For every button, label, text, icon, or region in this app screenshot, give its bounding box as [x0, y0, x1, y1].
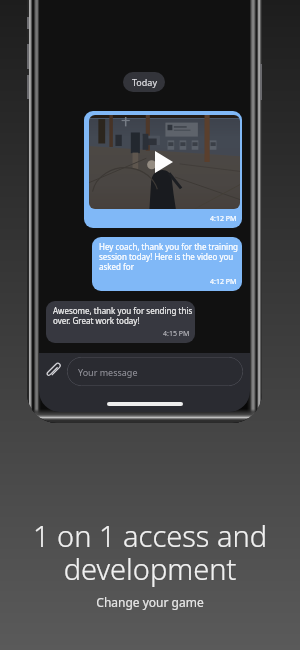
staticText: 4:12 PM	[210, 277, 237, 287]
button[interactable]: Hey coach, thank you for the training se…	[92, 237, 242, 291]
button[interactable]: Awesome, thank you for sending this over…	[46, 301, 195, 343]
staticText: Today	[132, 76, 157, 88]
staticText: Change your game	[0, 594, 300, 610]
button[interactable]: Attach file	[45, 362, 62, 379]
staticText: Hey coach, thank you for the training se…	[99, 241, 240, 273]
staticText: 1 on 1 access and development	[10, 516, 290, 588]
button[interactable]: 4:12 PM	[84, 111, 242, 228]
button[interactable]: Your message	[67, 357, 243, 386]
staticText: Awesome, thank you for sending this over…	[53, 305, 193, 327]
staticText: 4:12 PM	[210, 214, 237, 224]
staticText: 4:15 PM	[163, 329, 190, 339]
button[interactable]: Today	[123, 72, 165, 92]
staticText: Your message	[78, 366, 138, 378]
